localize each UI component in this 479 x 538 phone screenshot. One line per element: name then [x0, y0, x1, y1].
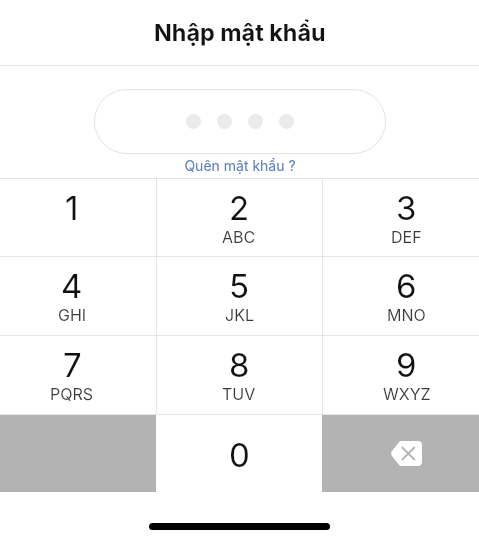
button[interactable]: 3	[322, 179, 479, 256]
staticText: 7	[63, 345, 82, 385]
staticText: 2	[229, 188, 250, 228]
staticText: GHI	[58, 305, 87, 324]
staticText: WXYZ	[383, 384, 431, 403]
button[interactable]: Quên mật khẩu ?	[184, 157, 296, 174]
staticText: 9	[396, 345, 417, 385]
button[interactable]: Password field	[94, 89, 386, 154]
button[interactable]: 7	[0, 336, 156, 414]
staticText: DEF	[391, 227, 422, 246]
button[interactable]: Backspace	[322, 415, 479, 492]
staticText: Nhập mật khẩu	[154, 18, 326, 46]
staticText: 1	[65, 188, 79, 228]
button[interactable]: 1	[0, 179, 156, 256]
button[interactable]: 5	[156, 257, 322, 335]
button[interactable]: 2	[156, 179, 322, 256]
staticText: 4	[61, 266, 83, 306]
staticText: JKL	[225, 305, 254, 324]
staticText: MNO	[387, 305, 426, 324]
button[interactable]: 8	[156, 336, 322, 414]
staticText: 5	[229, 266, 250, 306]
staticText: ABC	[222, 227, 256, 246]
button[interactable]: 6	[322, 257, 479, 335]
button[interactable]: 0	[156, 415, 322, 492]
staticText: 3	[396, 188, 417, 228]
staticText: 0	[229, 435, 250, 475]
staticText: TUV	[222, 384, 256, 403]
staticText: Quên mật khẩu ?	[184, 157, 296, 174]
staticText: 8	[229, 345, 250, 385]
staticText: 6	[396, 266, 417, 306]
button[interactable]: 9	[322, 336, 479, 414]
button[interactable]: 4	[0, 257, 156, 335]
staticText: PQRS	[50, 384, 94, 403]
